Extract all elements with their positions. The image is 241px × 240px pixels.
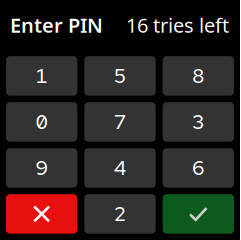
button[interactable]: 4: [84, 148, 156, 188]
staticText: 3: [192, 109, 204, 135]
button[interactable]: 2: [84, 194, 156, 234]
staticText: 4: [114, 155, 126, 181]
staticText: Enter PIN: [10, 12, 103, 38]
button[interactable]: 9: [6, 148, 77, 188]
staticText: 0: [36, 109, 48, 135]
button[interactable]: 1: [6, 56, 77, 96]
button[interactable]: 0: [6, 102, 77, 142]
staticText: 16 tries left: [126, 12, 229, 38]
button[interactable]: Enter: [163, 194, 234, 234]
staticText: 5: [114, 63, 126, 89]
button[interactable]: 3: [163, 102, 234, 142]
staticText: 1: [36, 63, 48, 89]
button[interactable]: 8: [163, 56, 234, 96]
staticText: 8: [192, 63, 204, 89]
staticText: 7: [114, 109, 126, 135]
button[interactable]: Cancel: [6, 194, 77, 234]
button[interactable]: 7: [84, 102, 156, 142]
button[interactable]: 5: [84, 56, 156, 96]
staticText: 9: [36, 155, 48, 181]
button[interactable]: 6: [163, 148, 234, 188]
staticText: 2: [114, 201, 126, 227]
staticText: 6: [192, 155, 204, 181]
